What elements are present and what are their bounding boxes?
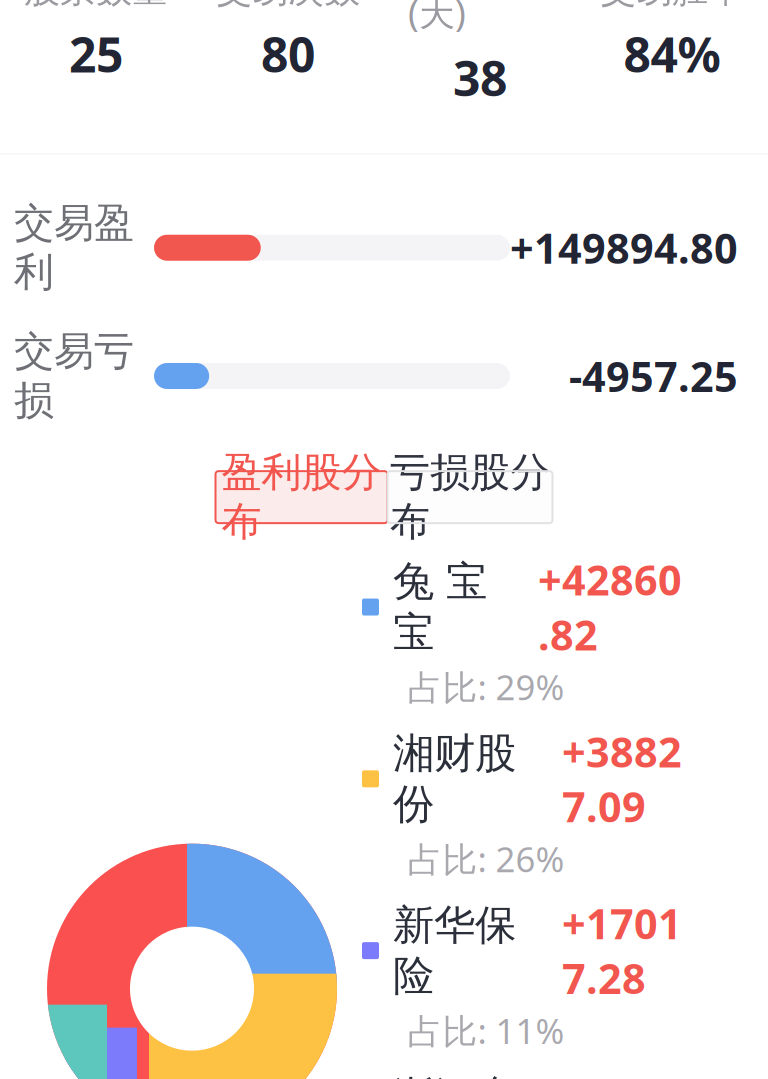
staticText: 亏损股分布 bbox=[390, 448, 550, 546]
staticText: 新华保险 bbox=[393, 900, 516, 1001]
staticText: 25 bbox=[69, 22, 123, 86]
staticText: 交易胜率 bbox=[600, 0, 744, 12]
staticText: 38 bbox=[453, 46, 507, 110]
staticText: 占比: 26% bbox=[407, 836, 564, 882]
staticText: 交易亏损 bbox=[14, 327, 134, 425]
staticText: +42860.82 bbox=[538, 552, 682, 662]
staticText: 占比: 11% bbox=[407, 1007, 564, 1053]
staticText: 交易盈利 bbox=[14, 199, 134, 297]
staticText: 兔 宝 宝 bbox=[393, 556, 487, 658]
staticText: -4957.25 bbox=[569, 348, 738, 403]
button[interactable]: 盈利股分布 bbox=[215, 471, 387, 523]
staticText: 股票数量 bbox=[24, 0, 168, 12]
staticText: +17017.28 bbox=[562, 896, 682, 1005]
staticText: 占比: 29% bbox=[407, 664, 564, 710]
staticText: +149894.80 bbox=[510, 220, 738, 275]
staticText: 80 bbox=[261, 22, 315, 86]
staticText: 84% bbox=[623, 22, 720, 86]
staticText: 交易次数 bbox=[216, 0, 360, 12]
staticText: 湘财股份 bbox=[393, 728, 516, 829]
staticText: +38827.09 bbox=[562, 724, 682, 834]
button[interactable]: 亏损股分布 bbox=[387, 471, 552, 523]
staticText: 浙江东方 bbox=[393, 1072, 516, 1079]
staticText: 持仓周期(天) bbox=[408, 0, 552, 36]
staticText: 盈利股分布 bbox=[221, 448, 381, 546]
